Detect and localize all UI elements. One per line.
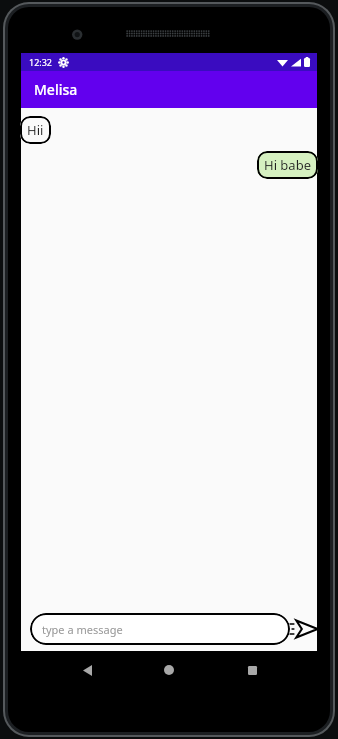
staticText: 12:32 bbox=[29, 56, 53, 68]
button[interactable]: Home bbox=[152, 653, 186, 687]
staticText: Hi babe bbox=[264, 156, 311, 174]
button[interactable]: Hi babe bbox=[257, 151, 318, 179]
staticText: type a message bbox=[42, 622, 123, 637]
button[interactable]: Recent apps bbox=[235, 653, 269, 687]
button[interactable]: type a message bbox=[30, 613, 290, 645]
staticText: Hii bbox=[27, 121, 44, 139]
staticText: Melisa bbox=[34, 80, 78, 99]
button[interactable]: Melisa bbox=[21, 71, 317, 108]
button[interactable]: Back bbox=[70, 653, 104, 687]
button[interactable]: Send bbox=[290, 607, 317, 651]
button[interactable]: Hii bbox=[20, 116, 51, 144]
